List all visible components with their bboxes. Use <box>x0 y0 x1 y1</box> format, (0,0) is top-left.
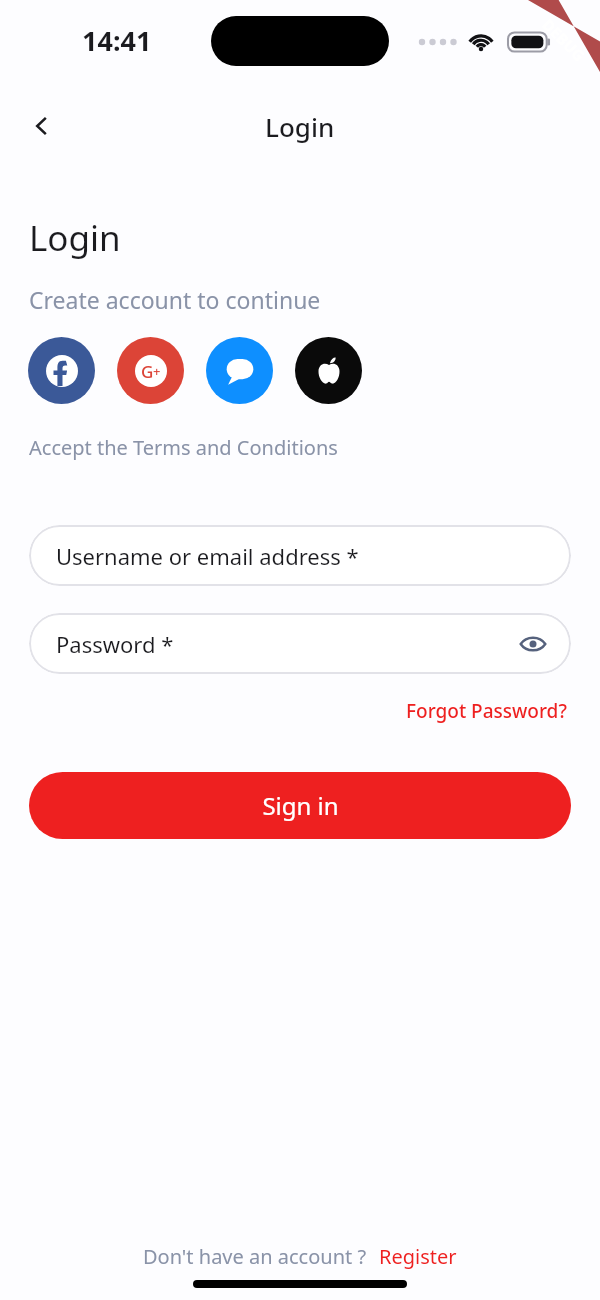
staticText: Username or email address * <box>56 541 359 571</box>
staticText: Password * <box>56 629 174 659</box>
button[interactable]: Forgot Password? <box>402 694 571 728</box>
button[interactable]: Sign in with Facebook <box>28 337 95 404</box>
staticText: Login <box>29 214 121 262</box>
button[interactable]: Sign in with Apple <box>295 337 362 404</box>
button[interactable]: Sign in <box>29 772 571 839</box>
button[interactable]: Register <box>379 1243 457 1270</box>
staticText: Register <box>379 1243 457 1270</box>
staticText: Accept the Terms and Conditions <box>29 434 338 461</box>
staticText: Don't have an account ? <box>143 1243 367 1270</box>
staticText: G <box>141 360 154 383</box>
staticText: DEBUG <box>538 14 589 65</box>
staticText: Sign in <box>262 789 339 822</box>
staticText: Login <box>265 109 335 144</box>
button[interactable]: Sign in with Messenger <box>206 337 273 404</box>
staticText: 14:41 <box>82 22 152 59</box>
button[interactable]: Password * <box>29 613 571 674</box>
staticText: + <box>153 362 161 380</box>
button[interactable]: Sign in with Google <box>117 337 184 404</box>
staticText: Forgot Password? <box>406 698 567 724</box>
staticText: Create account to continue <box>29 284 321 315</box>
button[interactable]: Back <box>18 102 66 150</box>
button[interactable]: Username or email address * <box>29 525 571 586</box>
button[interactable]: Show password <box>513 624 553 664</box>
